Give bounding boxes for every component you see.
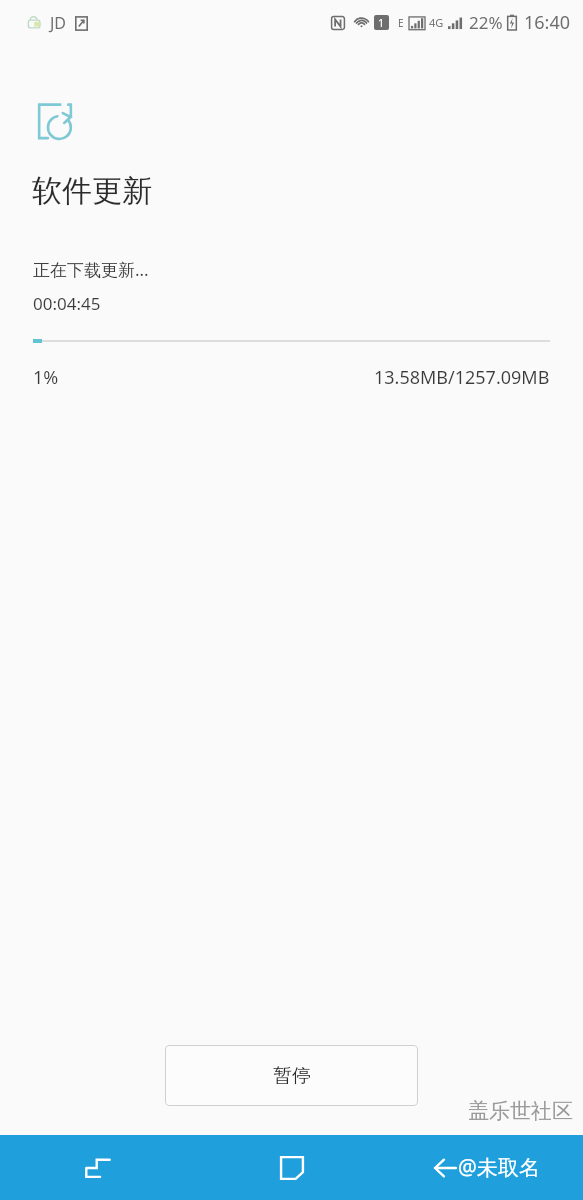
staticText: 暂停 [273, 1064, 311, 1088]
staticText: 13.58MB/1257.09MB [374, 365, 550, 390]
button[interactable]: Recent apps [0, 1135, 195, 1200]
button[interactable]: Home [195, 1135, 389, 1200]
staticText: 软件更新 [32, 172, 152, 210]
staticText: E [398, 16, 404, 30]
staticText: 1% [33, 365, 59, 390]
staticText: @未取名 [458, 1153, 540, 1182]
staticText: 16:40 [524, 10, 571, 35]
button[interactable]: 暂停 [165, 1045, 418, 1106]
staticText: 正在下载更新... [33, 258, 149, 281]
staticText: 盖乐世社区 [468, 1098, 573, 1124]
staticText: JD [50, 12, 67, 34]
staticText: 00:04:45 [33, 292, 101, 315]
staticText: 22% [469, 11, 503, 34]
button[interactable]: Back [389, 1135, 583, 1200]
staticText: 1 [378, 15, 385, 30]
staticText: 4G [429, 15, 444, 30]
